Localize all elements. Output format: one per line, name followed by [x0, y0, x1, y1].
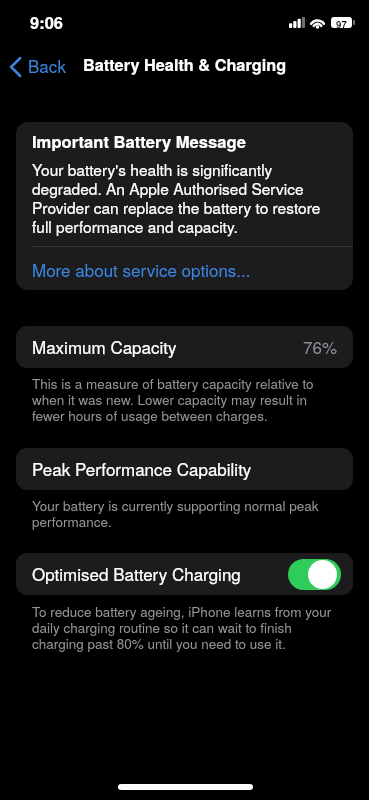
- staticText: Your battery's health is significantly d…: [32, 161, 338, 237]
- staticText: Your battery is currently supporting nor…: [32, 498, 337, 530]
- staticText: Optimised Battery Charging: [32, 561, 241, 585]
- staticText: Maximum Capacity: [32, 334, 177, 358]
- staticText: Battery Health & Charging: [83, 53, 287, 76]
- staticText: More about service options...: [32, 257, 251, 281]
- staticText: To reduce battery ageing, iPhone learns …: [32, 604, 337, 652]
- staticText: Important Battery Message: [32, 129, 246, 153]
- staticText: Back: [28, 53, 66, 77]
- button[interactable]: More about service options...: [16, 247, 353, 290]
- staticText: 97: [336, 17, 347, 28]
- staticText: 76%: [303, 334, 338, 358]
- button[interactable]: Back: [3, 50, 75, 78]
- staticText: 9:06: [30, 10, 64, 34]
- button[interactable]: Peak Performance Capability: [16, 448, 353, 490]
- button[interactable]: Maximum Capacity: [16, 326, 353, 368]
- staticText: This is a measure of battery capacity re…: [32, 376, 337, 424]
- staticText: Peak Performance Capability: [32, 456, 252, 480]
- button[interactable]: Optimised Battery Charging, on: [288, 559, 341, 590]
